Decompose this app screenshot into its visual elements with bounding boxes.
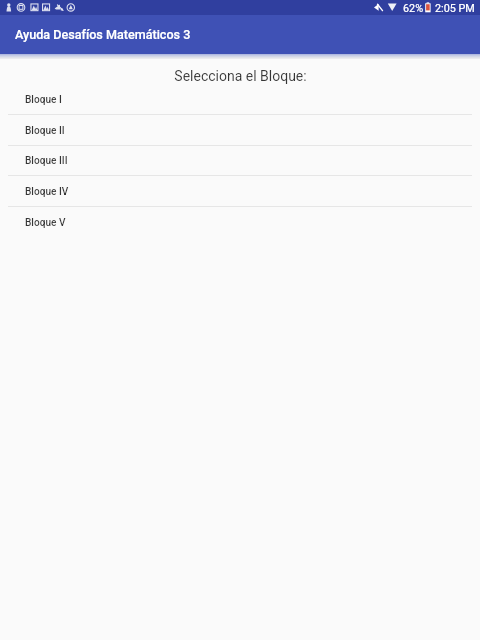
staticText: 2:05 PM (435, 2, 475, 15)
staticText: Bloque IV (25, 186, 69, 198)
staticText: Selecciona el Bloque: (174, 68, 307, 84)
button[interactable]: Bloque V (0, 208, 480, 238)
button[interactable]: Bloque I (0, 85, 480, 115)
staticText: Bloque I (25, 94, 62, 106)
button[interactable]: Bloque III (0, 146, 480, 176)
staticText: 62% (403, 2, 424, 15)
staticText: Bloque II (25, 125, 65, 137)
button[interactable]: Bloque II (0, 116, 480, 146)
staticText: Ayuda Desafíos Matemáticos 3 (15, 27, 191, 42)
button[interactable]: Bloque IV (0, 177, 480, 207)
staticText: Bloque III (25, 155, 68, 167)
staticText: Bloque V (25, 217, 66, 229)
